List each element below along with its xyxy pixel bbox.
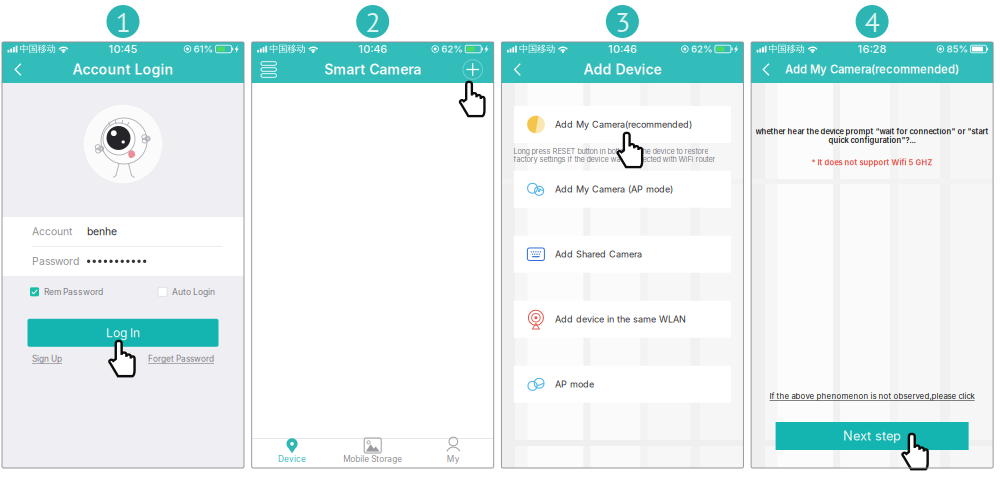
button[interactable]: Back bbox=[751, 56, 781, 83]
staticText: Add My Camera (AP mode) bbox=[555, 184, 673, 195]
button[interactable]: Menu bbox=[252, 56, 286, 83]
staticText: My bbox=[447, 454, 460, 464]
staticText: 中国移动 bbox=[769, 43, 805, 55]
staticText: Account Login bbox=[72, 61, 173, 78]
button[interactable]: Forget Password bbox=[148, 354, 214, 364]
staticText: Mobile Storage bbox=[343, 454, 402, 464]
button[interactable]: Mobile Storage bbox=[332, 439, 413, 468]
staticText: Add My Camera(recommended) bbox=[555, 119, 692, 130]
button[interactable]: Add Shared Camera bbox=[514, 236, 731, 273]
button[interactable]: Rem Password bbox=[30, 285, 103, 299]
button[interactable]: Auto Login bbox=[158, 285, 215, 299]
button[interactable]: Add device bbox=[452, 56, 494, 83]
button[interactable]: Back bbox=[2, 56, 34, 83]
button[interactable]: If the above phenomenon is not observed,… bbox=[770, 391, 975, 401]
staticText: 1 bbox=[115, 3, 130, 40]
staticText: 10:45 bbox=[108, 42, 137, 56]
staticText: benhe bbox=[87, 225, 117, 238]
staticText: Auto Login bbox=[172, 287, 215, 297]
staticText: 10:46 bbox=[358, 42, 387, 56]
staticText: Forget Password bbox=[148, 354, 214, 364]
staticText: 85% bbox=[946, 43, 968, 55]
staticText: Sign Up bbox=[32, 354, 62, 364]
staticText: Next step bbox=[843, 428, 901, 444]
staticText: Add device in the same WLAN bbox=[555, 314, 686, 325]
staticText: 2 bbox=[365, 3, 380, 40]
staticText: 中国移动 bbox=[19, 43, 55, 55]
staticText: * It does not support Wifi 5 GHZ bbox=[812, 158, 933, 167]
staticText: Add Shared Camera bbox=[555, 249, 642, 260]
staticText: 中国移动 bbox=[269, 43, 305, 55]
button[interactable]: Log In bbox=[27, 319, 218, 347]
button[interactable]: Add My Camera (AP mode) bbox=[514, 171, 731, 208]
staticText: Password bbox=[32, 255, 79, 268]
staticText: 16:28 bbox=[858, 42, 887, 56]
staticText: 62% bbox=[441, 43, 463, 55]
staticText: Device bbox=[278, 454, 306, 464]
staticText: Add Device bbox=[583, 61, 661, 78]
staticText: Log In bbox=[106, 325, 140, 340]
staticText: 4 bbox=[865, 3, 880, 40]
staticText: 3 bbox=[615, 3, 630, 40]
staticText: Long press RESET button in bottom of the… bbox=[513, 147, 708, 156]
staticText: 61% bbox=[193, 43, 213, 55]
staticText: 中国移动 bbox=[519, 43, 555, 55]
staticText: 10:46 bbox=[608, 42, 637, 56]
staticText: AP mode bbox=[555, 379, 594, 390]
button[interactable]: My bbox=[413, 439, 494, 468]
staticText: Account bbox=[32, 225, 72, 238]
staticText: whether hear the device prompt “wait for… bbox=[756, 127, 989, 136]
staticText: 62% bbox=[691, 43, 713, 55]
button[interactable]: Next step bbox=[776, 422, 969, 450]
staticText: If the above phenomenon is not observed,… bbox=[770, 391, 975, 401]
button[interactable]: Add device in the same WLAN bbox=[514, 301, 731, 338]
button[interactable]: Back bbox=[501, 56, 533, 83]
button[interactable]: Add My Camera(recommended) bbox=[514, 106, 731, 143]
button[interactable]: Sign Up bbox=[32, 354, 62, 364]
staticText: Smart Camera bbox=[324, 61, 421, 78]
staticText: factory settings if the device was conne… bbox=[513, 155, 715, 164]
staticText: Add My Camera(recommended) bbox=[785, 63, 959, 76]
staticText: Rem Password bbox=[44, 287, 103, 297]
staticText: quick configuration"?... bbox=[829, 136, 916, 145]
button[interactable]: Device bbox=[252, 439, 332, 468]
button[interactable]: AP mode bbox=[514, 366, 731, 403]
